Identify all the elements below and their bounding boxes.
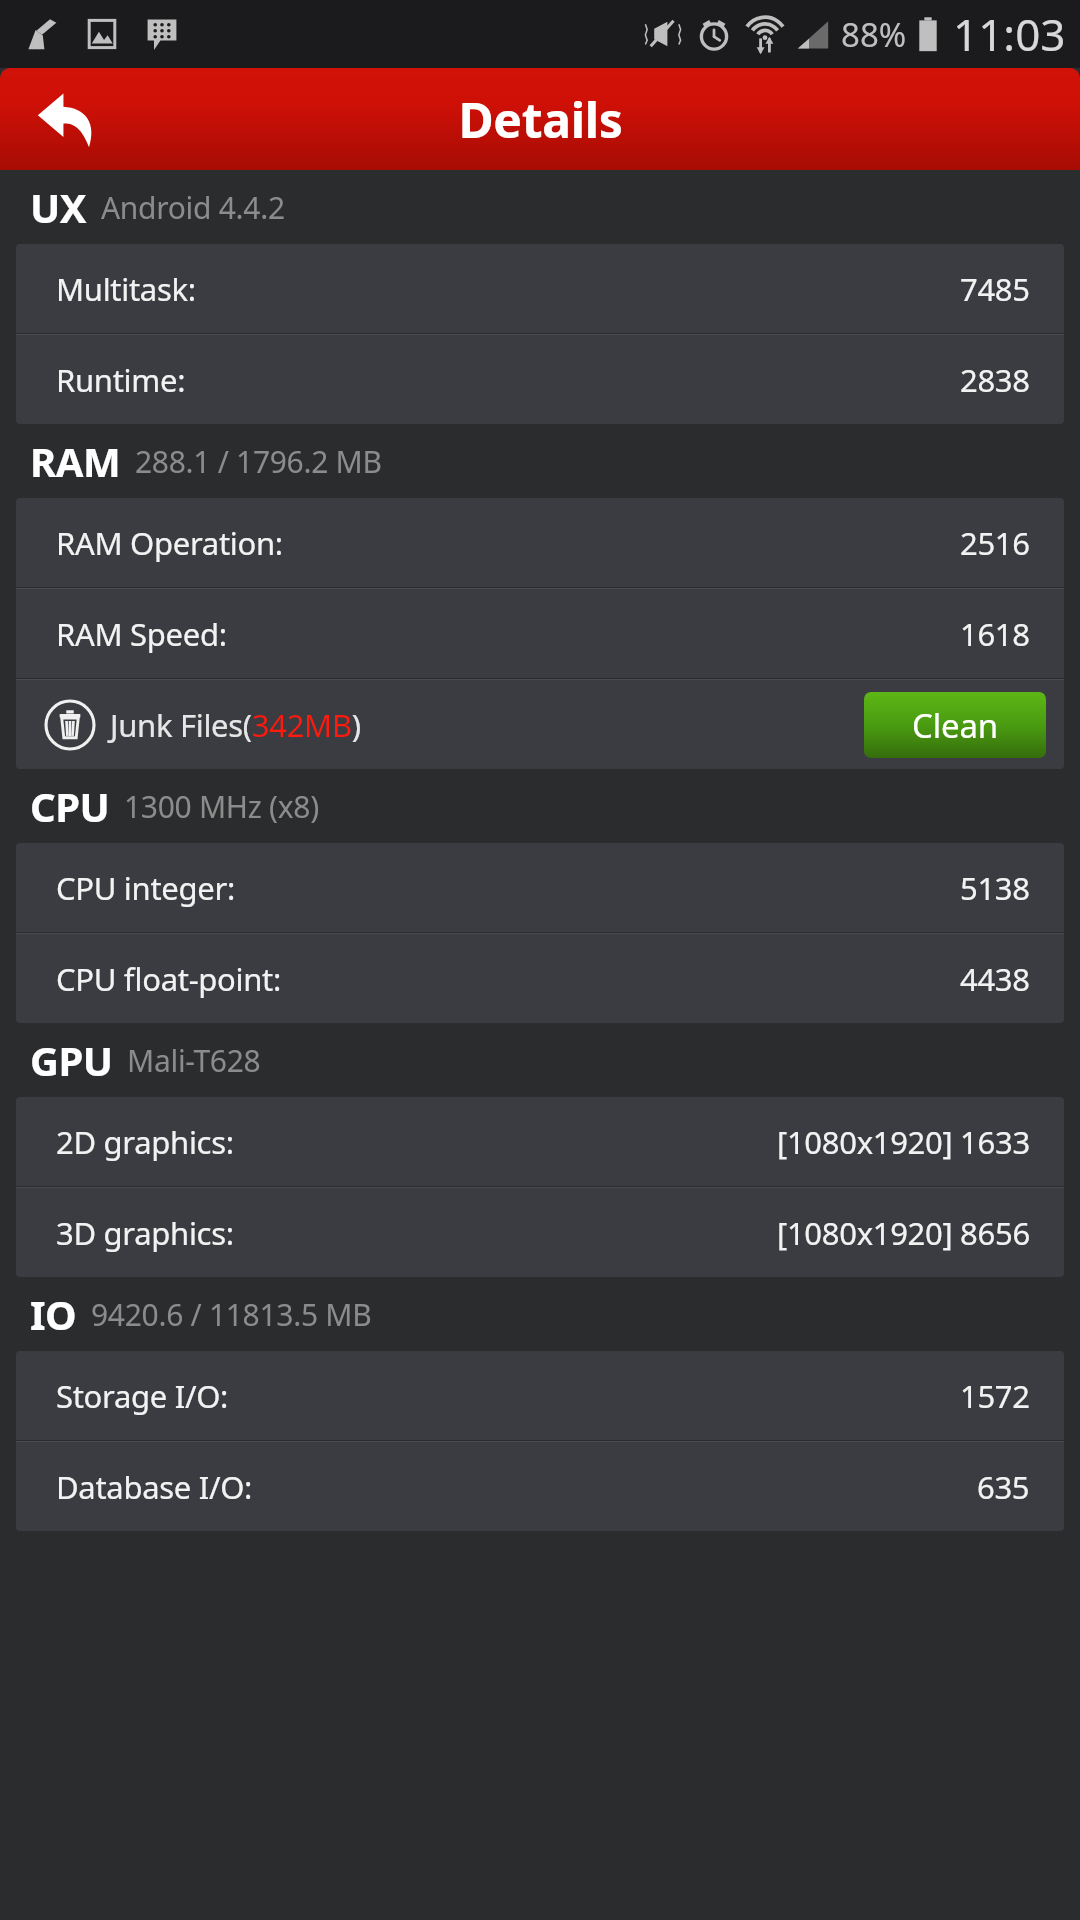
button[interactable]: RAM Operation: bbox=[16, 498, 1064, 587]
staticText: CPU bbox=[30, 779, 110, 833]
staticText: 7485 bbox=[960, 268, 1030, 310]
staticText: 5138 bbox=[960, 867, 1030, 909]
button[interactable]: Storage I/O: bbox=[16, 1351, 1064, 1440]
staticText: 2516 bbox=[960, 522, 1030, 564]
staticText: RAM bbox=[30, 434, 121, 488]
staticText: CPU integer: bbox=[56, 867, 235, 909]
staticText: Multitask: bbox=[56, 268, 196, 310]
staticText: 635 bbox=[977, 1466, 1030, 1508]
staticText: RAM Speed: bbox=[56, 613, 227, 655]
staticText: [1080x1920] 1633 bbox=[777, 1121, 1030, 1163]
button[interactable]: Database I/O: bbox=[16, 1442, 1064, 1531]
button[interactable]: Junk Files(342MB) bbox=[16, 680, 1064, 769]
staticText: Junk Files(342MB) bbox=[110, 704, 361, 746]
button[interactable]: Back bbox=[34, 87, 98, 151]
staticText: Mali-T628 bbox=[127, 1040, 261, 1081]
button[interactable]: Multitask: bbox=[16, 244, 1064, 333]
staticText: 88% bbox=[841, 12, 907, 57]
staticText: 2D graphics: bbox=[56, 1121, 234, 1163]
staticText: 9420.6 / 11813.5 MB bbox=[91, 1294, 372, 1335]
button[interactable]: RAM Speed: bbox=[16, 589, 1064, 678]
staticText: UX bbox=[30, 180, 87, 234]
staticText: CPU float-point: bbox=[56, 958, 282, 1000]
button[interactable]: Runtime: bbox=[16, 335, 1064, 424]
button[interactable]: CPU float-point: bbox=[16, 934, 1064, 1023]
staticText: 288.1 / 1796.2 MB bbox=[135, 441, 382, 482]
button[interactable]: CPU integer: bbox=[16, 843, 1064, 932]
button[interactable]: Clean bbox=[864, 692, 1046, 758]
staticText: GPU bbox=[30, 1033, 113, 1087]
staticText: Database I/O: bbox=[56, 1466, 253, 1508]
staticText: 11:03 bbox=[953, 4, 1066, 64]
staticText: 1300 MHz (x8) bbox=[124, 786, 319, 827]
button[interactable]: 2D graphics: bbox=[16, 1097, 1064, 1186]
staticText: 1572 bbox=[960, 1375, 1030, 1417]
staticText: 4438 bbox=[960, 958, 1030, 1000]
staticText: 1618 bbox=[960, 613, 1030, 655]
button[interactable]: 3D graphics: bbox=[16, 1188, 1064, 1277]
staticText: RAM Operation: bbox=[56, 522, 283, 564]
staticText: Runtime: bbox=[56, 359, 186, 401]
staticText: 3D graphics: bbox=[56, 1212, 234, 1254]
staticText: Storage I/O: bbox=[56, 1375, 229, 1417]
staticText: 2838 bbox=[960, 359, 1030, 401]
staticText: Clean bbox=[912, 703, 998, 748]
staticText: [1080x1920] 8656 bbox=[777, 1212, 1030, 1254]
staticText: Android 4.4.2 bbox=[101, 187, 285, 228]
staticText: IO bbox=[30, 1287, 77, 1341]
staticText: Details bbox=[458, 87, 623, 152]
